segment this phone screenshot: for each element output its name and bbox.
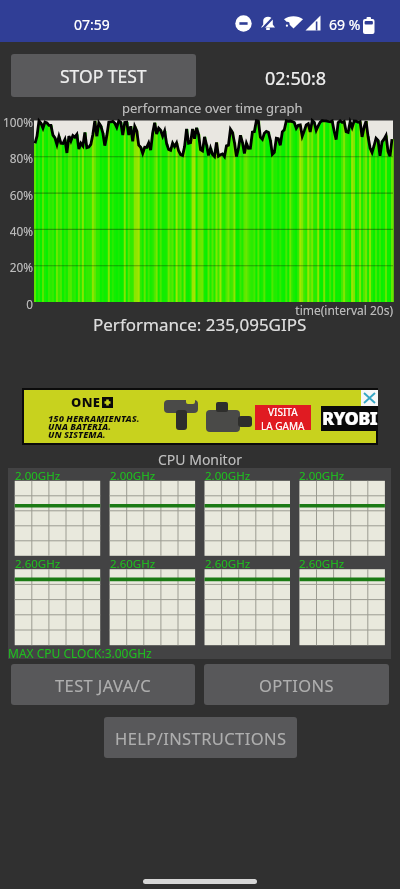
button[interactable]: TEST JAVA/C	[11, 664, 195, 705]
staticText: Performance: 235,095GIPS	[93, 313, 307, 336]
button[interactable]: OPTIONS	[204, 664, 389, 705]
staticText: RYOBI	[322, 406, 378, 431]
staticText: 2.60GHz	[299, 556, 345, 572]
button[interactable]: STOP TEST	[11, 54, 196, 97]
staticText: performance over time graph	[122, 99, 303, 117]
staticText: 2.00GHz	[299, 468, 345, 484]
staticText: 69 %	[329, 15, 361, 34]
staticText: UN SISTEMA.	[48, 428, 106, 441]
staticText: 2.00GHz	[110, 468, 156, 484]
staticText: 20%	[0, 259, 33, 275]
staticText: TEST JAVA/C	[55, 674, 152, 696]
staticText: ONE	[71, 393, 101, 411]
staticText: 2.00GHz	[15, 468, 61, 484]
staticText: LA GAMA	[261, 419, 305, 430]
staticText: 07:59	[74, 15, 110, 34]
staticText: MAX CPU CLOCK:3.00GHz	[8, 645, 152, 661]
button[interactable]: ONE	[22, 388, 378, 445]
staticText: 02:50:8	[265, 66, 327, 91]
staticText: 150 HERRAMIENTAS.	[48, 412, 140, 425]
staticText: 100%	[0, 114, 33, 130]
staticText: VISITA	[268, 405, 298, 419]
staticText: STOP TEST	[60, 64, 147, 88]
staticText: time(interval 20s)	[240, 302, 393, 318]
staticText: 2.00GHz	[205, 468, 251, 484]
staticText: 80%	[0, 150, 33, 166]
staticText: 2.60GHz	[110, 556, 156, 572]
staticText: CPU Monitor	[158, 450, 242, 469]
staticText: 2.60GHz	[15, 556, 61, 572]
staticText: HELP/INSTRUCTIONS	[115, 727, 287, 749]
staticText: UNA BATERÍA.	[48, 420, 112, 433]
staticText: OPTIONS	[259, 674, 334, 696]
staticText: 2.60GHz	[205, 556, 251, 572]
staticText: 60%	[0, 187, 33, 203]
staticText: 0	[0, 296, 33, 312]
button[interactable]: Close ad	[361, 390, 378, 406]
staticText: 40%	[0, 223, 33, 239]
button[interactable]: HELP/INSTRUCTIONS	[104, 717, 297, 758]
